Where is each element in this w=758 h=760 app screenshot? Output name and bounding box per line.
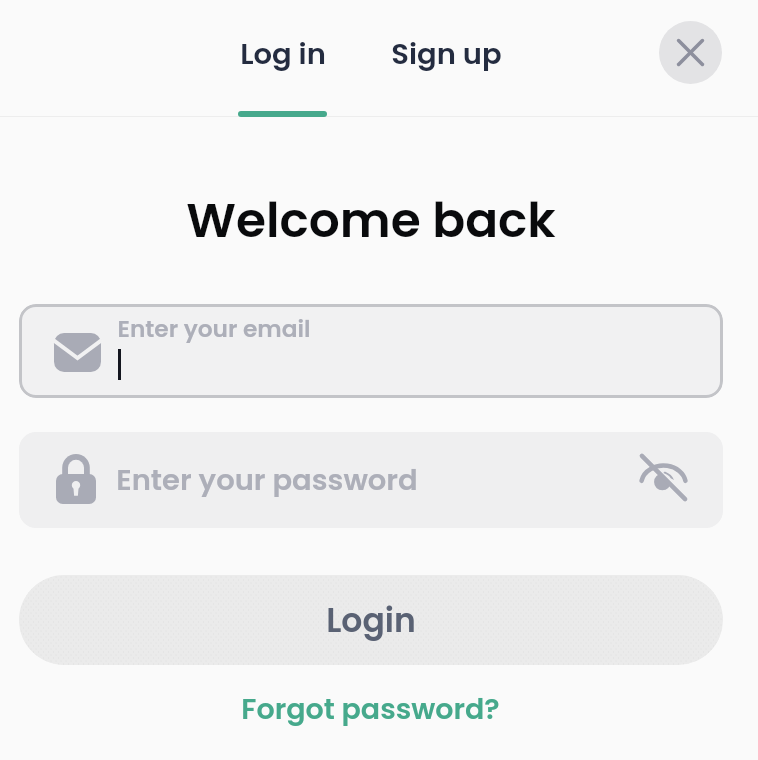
staticText: Enter your email bbox=[117, 313, 311, 346]
button[interactable]: Show password bbox=[633, 447, 693, 507]
button[interactable]: Forgot password? bbox=[210, 686, 530, 732]
button[interactable]: Close bbox=[659, 21, 722, 84]
button[interactable]: Log in bbox=[216, 19, 350, 89]
staticText: Log in bbox=[240, 34, 326, 75]
button[interactable]: Sign up bbox=[379, 19, 513, 89]
staticText: Login bbox=[326, 597, 416, 643]
staticText: Enter your password bbox=[116, 460, 418, 501]
button[interactable]: Enter your email bbox=[19, 304, 723, 398]
staticText: Welcome back bbox=[186, 186, 556, 254]
staticText: Sign up bbox=[391, 34, 502, 75]
button[interactable]: Login bbox=[19, 575, 723, 665]
staticText: Forgot password? bbox=[241, 689, 500, 729]
button[interactable]: Enter your password bbox=[19, 432, 723, 528]
